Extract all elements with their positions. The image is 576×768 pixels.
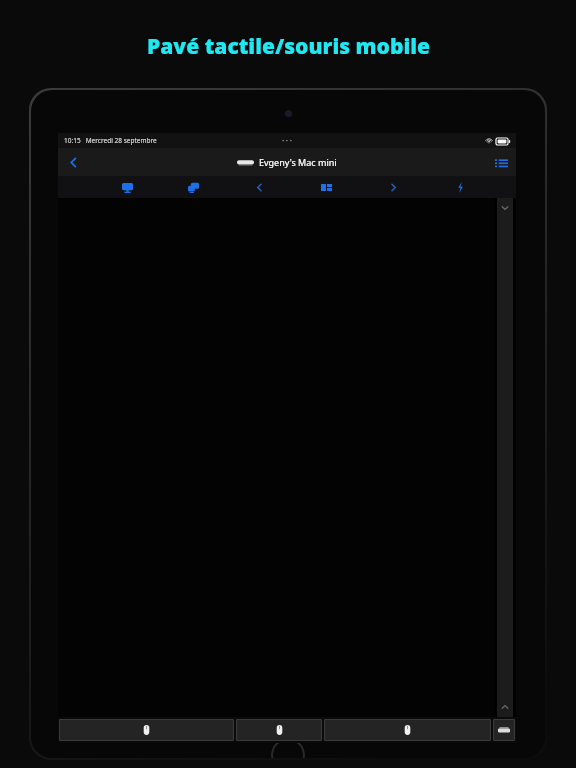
button[interactable]: Next xyxy=(360,176,427,198)
staticText: • • • xyxy=(282,137,292,145)
staticText: 10:15 Mercredi 28 septembre xyxy=(64,136,157,145)
button[interactable]: Keyboard xyxy=(493,719,515,741)
staticText: Evgeny's Mac mini xyxy=(259,156,337,168)
button[interactable]: Screens xyxy=(160,176,226,198)
button[interactable]: Left click xyxy=(59,719,234,741)
staticText: Pavé tactile/souris mobile xyxy=(147,32,430,61)
button[interactable]: Scroll up xyxy=(497,697,513,717)
button[interactable]: Right click xyxy=(324,719,491,741)
button[interactable]: Power xyxy=(427,176,494,198)
button[interactable]: Scroll down xyxy=(497,198,513,218)
button[interactable]: Previous xyxy=(226,176,293,198)
button[interactable]: Menu xyxy=(486,148,516,176)
button[interactable]: Display xyxy=(94,176,160,198)
button[interactable]: Windows xyxy=(293,176,360,198)
button[interactable]: Back xyxy=(58,148,88,176)
button[interactable]: Middle click xyxy=(236,719,322,741)
